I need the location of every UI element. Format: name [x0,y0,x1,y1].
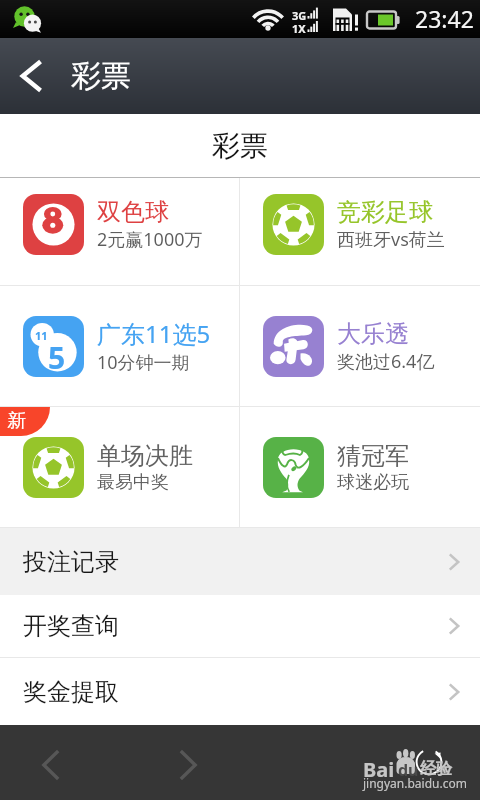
button[interactable]: 单场决胜 [0,407,239,527]
button[interactable]: 竞彩足球 [240,171,480,278]
staticText: 经验 [420,759,452,779]
staticText: 奖金提取 [23,677,119,707]
staticText: 大乐透 [337,319,409,349]
staticText: 5 [48,337,66,377]
staticText: du [398,759,419,781]
staticText: 单场决胜 [97,441,193,471]
staticText: 广东11选5 [97,317,211,350]
staticText: 猜冠军 [337,441,409,471]
staticText: 竞彩足球 [337,197,433,227]
button[interactable]: 双色球 [0,171,239,278]
staticText: 11 [35,328,48,343]
staticText: Bai [363,756,395,783]
button[interactable]: Back [34,748,68,782]
button[interactable]: 大乐透 [240,286,480,406]
staticText: 西班牙vs荷兰 [337,227,445,252]
button[interactable]: 开奖查询 [0,595,480,657]
staticText: 23:42 [415,3,474,34]
button[interactable]: 猜冠军 [240,407,480,527]
staticText: 开奖查询 [23,611,119,641]
staticText: 2元赢1000万 [97,227,203,252]
staticText: 奖池过6.4亿 [337,349,435,374]
button[interactable]: Back [0,38,56,114]
button[interactable]: 投注记录 [0,528,480,595]
button[interactable]: 11 [0,286,239,406]
button[interactable]: Forward [171,748,205,782]
staticText: 10分钟一期 [97,350,190,375]
staticText: 双色球 [97,197,169,227]
staticText: 投注记录 [23,547,119,577]
staticText: 彩票 [212,128,268,163]
staticText: 1X [292,21,306,36]
staticText: 3G [292,8,307,23]
staticText: 最易中奖 [97,471,169,494]
staticText: 彩票 [71,57,131,95]
button[interactable]: 奖金提取 [0,658,480,725]
staticText: 球迷必玩 [337,471,409,494]
staticText: 新 [7,409,26,433]
staticText: jingyan.baidu.com [363,775,467,791]
